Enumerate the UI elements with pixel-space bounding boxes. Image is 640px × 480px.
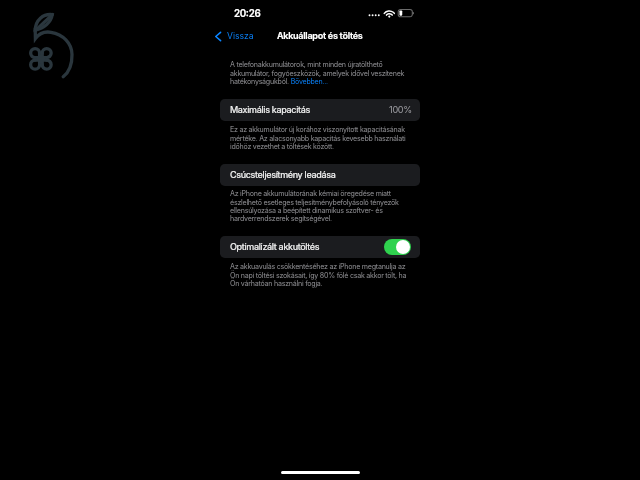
button[interactable]: Vissza [213, 30, 257, 42]
button[interactable]: Optimalizált akkutöltés kapcsoló [384, 239, 411, 255]
staticText: Az akkuavulás csökkentéséhez az iPhone m… [230, 262, 409, 287]
other: Cellular, Wi-Fi and battery status [366, 6, 416, 20]
staticText: 20:26 [234, 8, 261, 20]
button[interactable]: Maximális kapacitás [220, 99, 420, 121]
button[interactable]: Csúcsteljesítmény leadása [220, 164, 420, 186]
staticText: Csúcsteljesítmény leadása [230, 169, 336, 180]
button[interactable]: Optimalizált akkutöltés [220, 236, 420, 258]
staticText: Az iPhone akkumulátorának kémiai öregedé… [230, 189, 409, 222]
staticText: Maximális kapacitás [230, 104, 310, 115]
staticText: A telefonakkumulátorok, mint minden újra… [230, 60, 409, 85]
staticText: Vissza [227, 31, 254, 41]
staticText: Optimalizált akkutöltés [230, 241, 320, 252]
other: Vissza [215, 32, 221, 41]
staticText: Ez az akkumulátor új korához viszonyítot… [230, 125, 409, 150]
staticText: 100% [389, 104, 412, 115]
staticText: Akkuállapot és töltés [277, 30, 363, 41]
